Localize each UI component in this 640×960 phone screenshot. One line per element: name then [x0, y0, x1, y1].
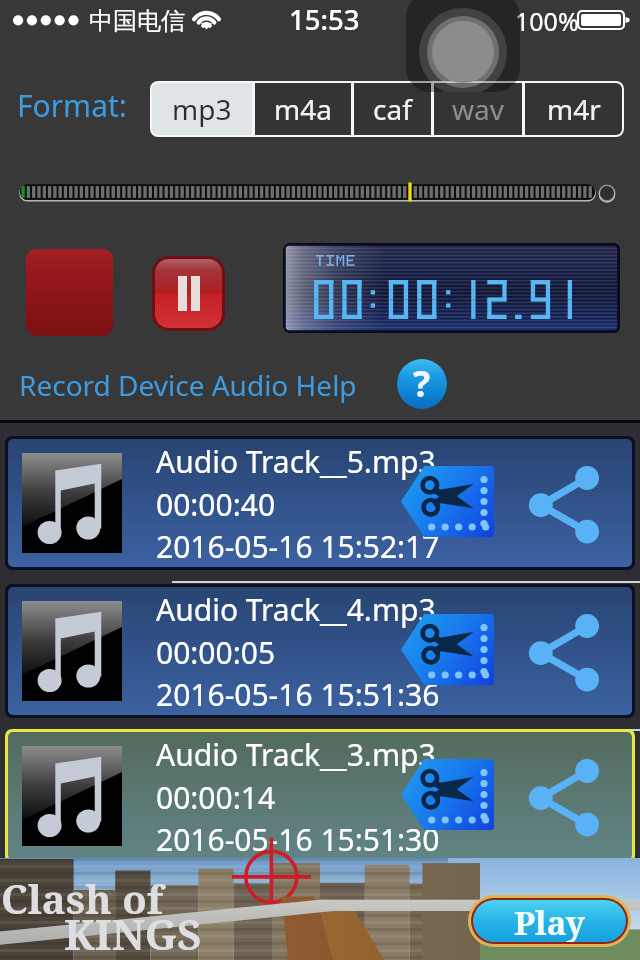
staticText: 2016-05-16 15:51:36 [156, 674, 440, 715]
staticText: m4a [274, 90, 332, 128]
staticText: Format: [17, 85, 127, 126]
staticText: 100% [515, 4, 579, 38]
button[interactable]: Audio Track__4.mp3 [8, 587, 632, 715]
button[interactable]: Record [26, 249, 113, 336]
button[interactable]: Share [517, 462, 599, 542]
button[interactable]: Help [397, 359, 447, 409]
staticText: 2016-05-16 15:51:30 [156, 819, 440, 860]
button[interactable]: Clash of [0, 858, 640, 960]
staticText: KINGS [64, 905, 202, 960]
button[interactable]: Audio Track__5.mp3 [8, 439, 632, 567]
staticText: 2016-05-16 15:52:17 [156, 526, 440, 567]
button[interactable]: m4a [255, 83, 351, 135]
button[interactable]: AssistiveTouch [406, 0, 520, 92]
staticText: 00:00:40 [156, 484, 276, 525]
button[interactable]: Trim [401, 614, 494, 685]
button[interactable]: Audio Track__3.mp3 [8, 732, 632, 860]
staticText: 中国电信 [89, 6, 185, 36]
button[interactable]: Share [517, 755, 599, 835]
staticText: m4r [547, 90, 601, 128]
staticText: Play [514, 900, 585, 942]
button[interactable]: caf [354, 83, 431, 135]
staticText: caf [373, 90, 412, 128]
button[interactable]: Pause [155, 259, 222, 328]
button[interactable]: wav [434, 83, 522, 135]
button[interactable]: mp3 [152, 83, 252, 135]
staticText: Audio Track__5.mp3 [156, 441, 436, 482]
button[interactable]: m4r [525, 83, 622, 135]
button[interactable]: Play [473, 900, 626, 942]
staticText: Audio Track__3.mp3 [156, 734, 436, 775]
button[interactable]: Trim [401, 759, 494, 830]
staticText: wav [452, 90, 504, 128]
button[interactable]: Share [517, 610, 599, 690]
staticText: ? [413, 359, 431, 408]
staticText: 00:00:05 [156, 632, 276, 673]
staticText: Clash of [1, 871, 163, 925]
staticText: Audio Track__4.mp3 [156, 589, 436, 630]
button[interactable]: Record Device Audio Help [19, 366, 357, 404]
button[interactable]: Trim [401, 466, 494, 537]
staticText: 15:53 [289, 1, 360, 38]
staticText: mp3 [172, 90, 232, 128]
staticText: 00:00:14 [156, 777, 276, 818]
